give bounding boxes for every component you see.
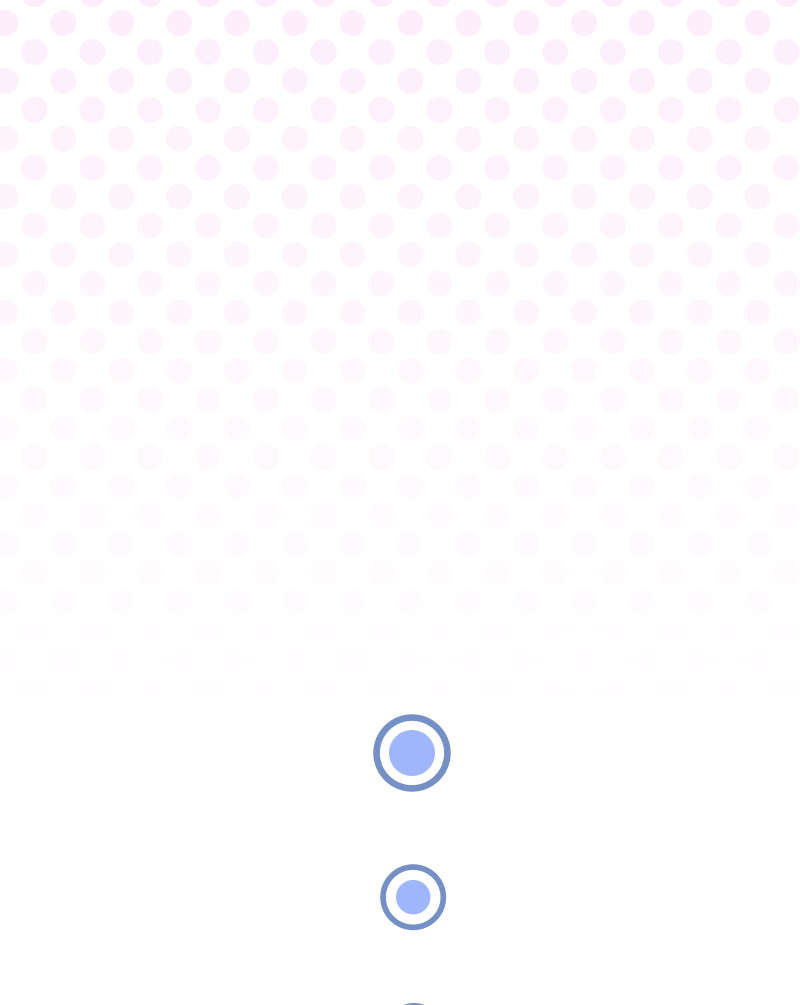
button[interactable]: Option bbox=[386, 1003, 442, 1005]
button[interactable]: Selected option bbox=[373, 714, 451, 792]
button[interactable]: Option bbox=[380, 864, 446, 930]
